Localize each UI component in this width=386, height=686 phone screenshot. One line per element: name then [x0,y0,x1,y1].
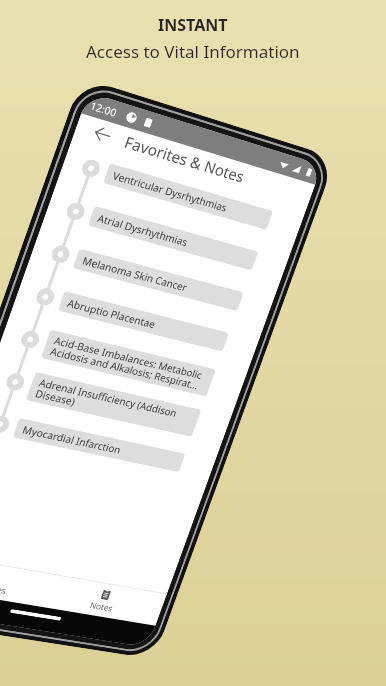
button[interactable]: Ventricular Dysrhythmias [103,163,273,230]
staticText: Access to Vital Information [86,40,300,63]
button[interactable]: Acid-Base Imbalances: Metabolic Acidosis… [41,329,216,397]
staticText: Atrial Dysrhythmias [96,211,190,249]
button[interactable]: Abruptio Placentae [57,291,229,352]
button[interactable]: Melanoma Skin Cancer [73,248,244,311]
button[interactable]: Atrial Dysrhythmias [88,206,259,271]
staticText: Abruptio Placentae [65,296,158,331]
button[interactable]: Back [86,119,119,150]
staticText: Adrenal Insufficiency (Addison Disease) [33,375,194,434]
staticText: Notes [88,599,115,614]
button[interactable]: Adrenal Insufficiency (Addison Disease) [26,372,201,437]
staticText: Audio Notes [0,577,8,597]
button[interactable]: Audio Notes [0,553,50,606]
staticText: Favorites & Notes [122,131,248,187]
staticText: Ventricular Dysrhythmias [111,168,229,215]
button[interactable]: Myocardial Infarction [12,418,186,472]
staticText: Myocardial Infarction [21,422,123,457]
staticText: Acid-Base Imbalances: Metabolic Acidosis… [48,333,209,393]
staticText: Melanoma Skin Cancer [81,253,189,294]
staticText: 12:00 [88,98,119,120]
staticText: INSTANT [158,14,228,36]
button[interactable]: Notes [39,574,167,626]
